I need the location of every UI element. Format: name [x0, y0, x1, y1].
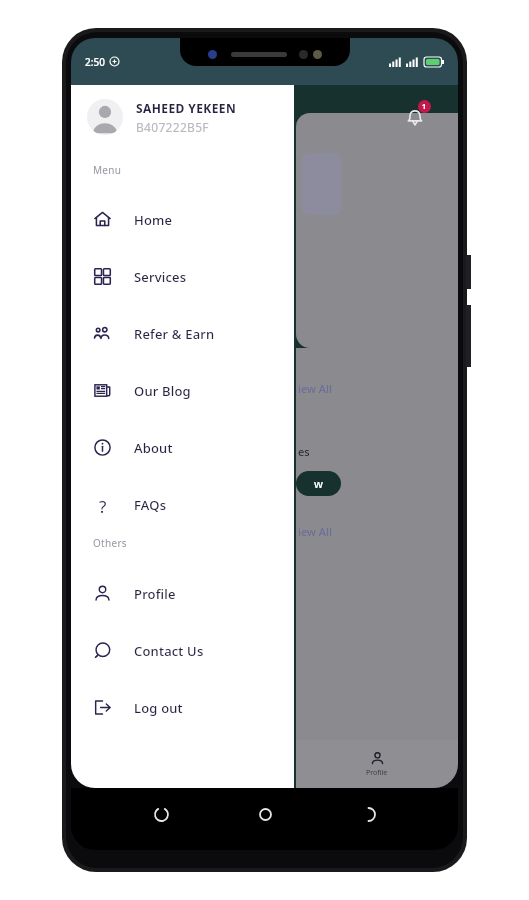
staticText: iew All [298, 524, 332, 539]
staticText: 1 [422, 102, 427, 112]
staticText: SAHEED YEKEEN [136, 100, 237, 116]
button[interactable]: About [71, 419, 294, 476]
button[interactable]: Profile [71, 565, 294, 622]
button[interactable]: Refer & Earn [71, 305, 294, 362]
staticText: Refer & Earn [134, 325, 215, 343]
staticText: Profile [134, 585, 176, 603]
staticText: Contact Us [134, 642, 204, 660]
staticText: Log out [134, 699, 183, 717]
staticText: w [314, 476, 323, 491]
button[interactable]: Our Blog [71, 362, 294, 419]
button[interactable]: Home [251, 800, 279, 828]
staticText: ? [99, 495, 107, 514]
staticText: iew All [298, 381, 332, 396]
button[interactable]: Services [71, 248, 294, 305]
button[interactable]: Log out [71, 679, 294, 736]
button[interactable]: Recent apps [147, 800, 175, 828]
button[interactable]: Home [71, 191, 294, 248]
staticText: Profile [366, 768, 388, 778]
staticText: Menu [93, 163, 122, 177]
button[interactable]: SAHEED YEKEEN [71, 99, 294, 135]
button[interactable]: Back [354, 800, 382, 828]
staticText: FAQs [134, 496, 167, 514]
staticText: 2:50 [85, 55, 105, 69]
button[interactable]: Notifications [397, 99, 433, 135]
staticText: B407222B5F [136, 119, 209, 135]
staticText: Our Blog [134, 382, 191, 400]
button[interactable]: Contact Us [71, 622, 294, 679]
staticText: About [134, 439, 173, 457]
staticText: Home [134, 211, 173, 229]
button[interactable]: ? [71, 476, 294, 533]
staticText: es [298, 444, 310, 459]
staticText: Services [134, 268, 187, 286]
staticText: Others [93, 536, 127, 550]
